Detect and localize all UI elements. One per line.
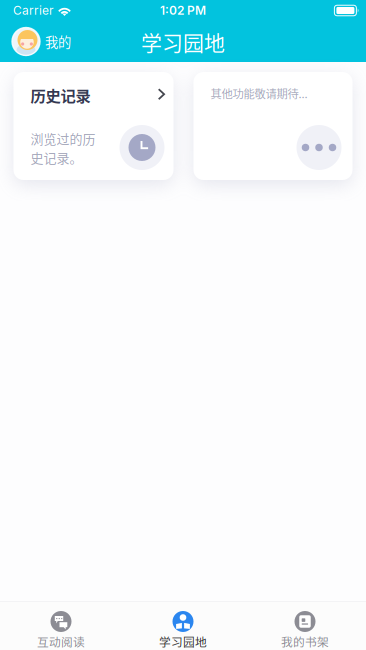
staticText: 我的书架 bbox=[281, 633, 329, 650]
staticText: 1:02 PM bbox=[160, 3, 206, 18]
staticText: Carrier bbox=[13, 3, 54, 18]
staticText: 我的 bbox=[45, 32, 71, 51]
button[interactable]: 历史记录 bbox=[13, 72, 173, 180]
staticText: 互动阅读 bbox=[37, 633, 85, 650]
staticText: 浏览过的历 bbox=[30, 129, 95, 148]
button[interactable]: 学习园地 bbox=[122, 602, 244, 650]
staticText: 学习园地 bbox=[159, 633, 207, 650]
button[interactable]: 互动阅读 bbox=[0, 602, 122, 650]
button[interactable]: 我的 bbox=[0, 21, 81, 62]
staticText: 学习园地 bbox=[141, 26, 225, 57]
staticText: 史记录。 bbox=[30, 148, 82, 167]
staticText: 历史记录 bbox=[30, 84, 90, 106]
staticText: 其他功能敬请期待... bbox=[210, 85, 307, 101]
button[interactable]: 我的书架 bbox=[244, 602, 366, 650]
